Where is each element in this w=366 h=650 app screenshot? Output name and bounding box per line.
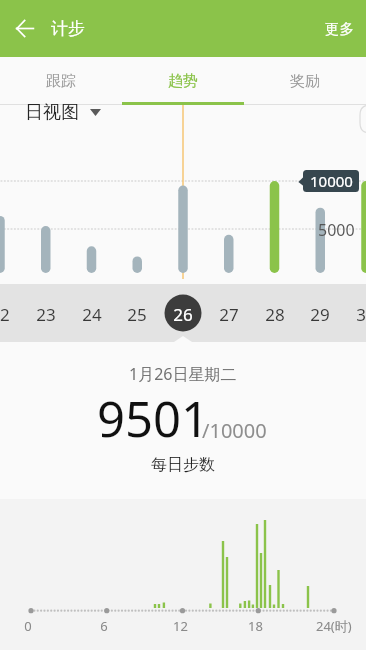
staticText: 跟踪 (46, 72, 76, 91)
staticText: 日视图 (25, 101, 79, 124)
staticText: /10000 (202, 417, 267, 444)
button[interactable]: 奖励 (244, 57, 366, 105)
staticText: 27 (219, 303, 239, 326)
button[interactable]: 29 (304, 301, 336, 327)
staticText: 0 (24, 617, 32, 635)
button[interactable]: 日视图 (25, 101, 101, 124)
staticText: 23 (36, 303, 56, 326)
staticText: 5000 (318, 219, 355, 241)
button[interactable]: 27 (213, 301, 245, 327)
button[interactable]: 23 (30, 301, 62, 327)
staticText: 10000 (310, 171, 353, 191)
button[interactable]: 28 (259, 301, 291, 327)
staticText: 9501 (97, 385, 210, 452)
staticText: 25 (127, 303, 147, 326)
staticText: 1月26日星期二 (129, 363, 237, 385)
button[interactable]: 30 (350, 301, 366, 327)
staticText: 计步 (51, 18, 85, 39)
staticText: 26 (173, 303, 193, 326)
staticText: 每日步数 (151, 455, 215, 475)
staticText: 18 (248, 617, 263, 635)
staticText: 29 (310, 303, 330, 326)
button[interactable]: 26 (167, 301, 199, 327)
staticText: 更多 (325, 20, 354, 38)
staticText: 6 (100, 617, 108, 635)
button[interactable]: 跟踪 (0, 57, 122, 105)
button[interactable]: 25 (121, 301, 153, 327)
button[interactable]: 22 (0, 301, 16, 327)
staticText: 22 (0, 303, 10, 326)
staticText: 24 (82, 303, 102, 326)
staticText: 30 (356, 303, 366, 326)
button[interactable]: 更多 (313, 10, 366, 48)
staticText: 趋势 (168, 72, 198, 91)
staticText: 12 (173, 617, 188, 635)
staticText: 24(时) (316, 617, 352, 635)
button[interactable]: Back (4, 8, 45, 49)
button[interactable]: 趋势 (122, 57, 244, 105)
staticText: 奖励 (290, 72, 320, 91)
staticText: 28 (265, 303, 285, 326)
button[interactable]: 24 (76, 301, 108, 327)
